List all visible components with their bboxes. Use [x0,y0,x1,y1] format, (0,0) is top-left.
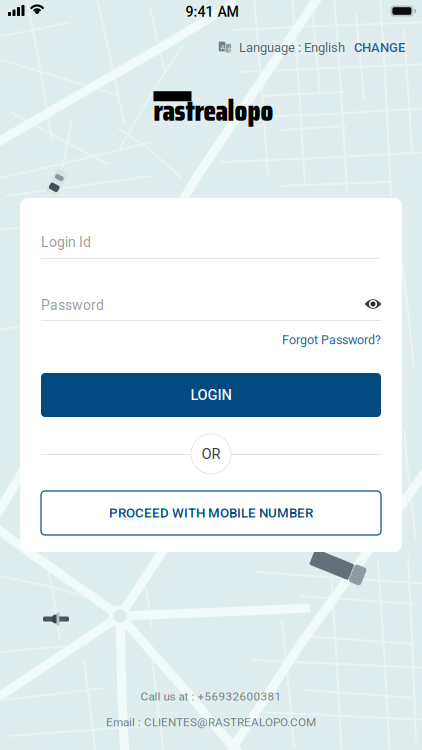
button[interactable]: PROCEED WITH MOBILE NUMBER [41,491,381,535]
staticText: Language : English [239,40,345,55]
staticText: OR [201,445,220,463]
staticText: Forgot Password? [282,333,381,347]
staticText: LOGIN [190,386,231,404]
button[interactable]: A [220,40,405,55]
staticText: CHANGE [354,40,405,55]
staticText: A [220,43,225,52]
staticText: 文 [226,46,232,54]
staticText: 9:41 AM [185,4,238,20]
staticText: Email : CLIENTES@RASTREALOPO.COM [106,715,316,729]
staticText: PROCEED WITH MOBILE NUMBER [109,505,313,521]
button[interactable]: LOGIN [41,373,381,417]
staticText: Call us at : +56932600381 [140,690,281,703]
staticText: Password [41,297,104,313]
button[interactable]: Forgot Password? [281,331,381,349]
staticText: Login Id [41,234,91,250]
staticText: rastrealopo [153,88,273,133]
